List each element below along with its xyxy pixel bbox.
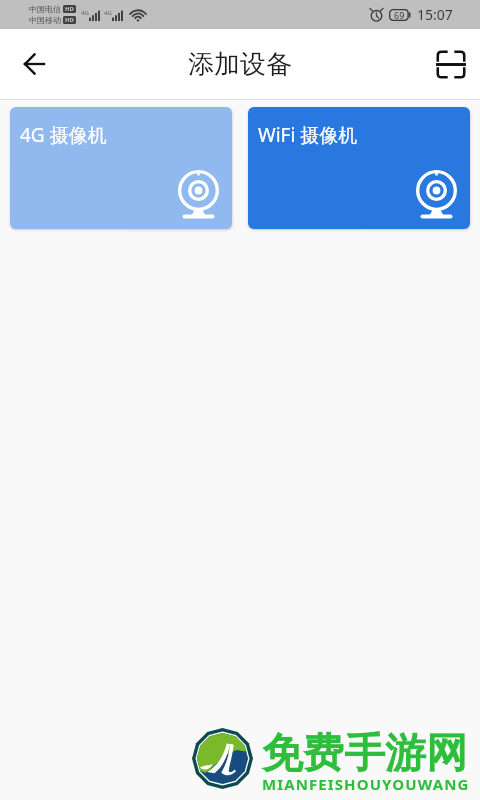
staticText: 4G 摄像机 [20, 122, 107, 148]
button[interactable]: Back [0, 30, 68, 98]
staticText: MIANFEISHOUYOUWANG [262, 774, 470, 794]
staticText: 中国电信 [29, 4, 61, 14]
staticText: 15:07 [417, 5, 453, 24]
staticText: HD [65, 5, 74, 13]
staticText: WiFi 摄像机 [258, 122, 358, 148]
staticText: 4G [104, 9, 112, 17]
button[interactable]: WiFi 摄像机 [248, 107, 470, 229]
staticText: 69 [394, 9, 405, 21]
staticText: 免费手游网 [262, 728, 467, 780]
button[interactable]: Scan QR code [422, 35, 480, 93]
staticText: 4G [81, 9, 89, 17]
staticText: HD [65, 16, 74, 24]
button[interactable]: 4G 摄像机 [10, 107, 232, 229]
staticText: 添加设备 [188, 48, 292, 81]
staticText: 中国移动 [29, 15, 61, 25]
